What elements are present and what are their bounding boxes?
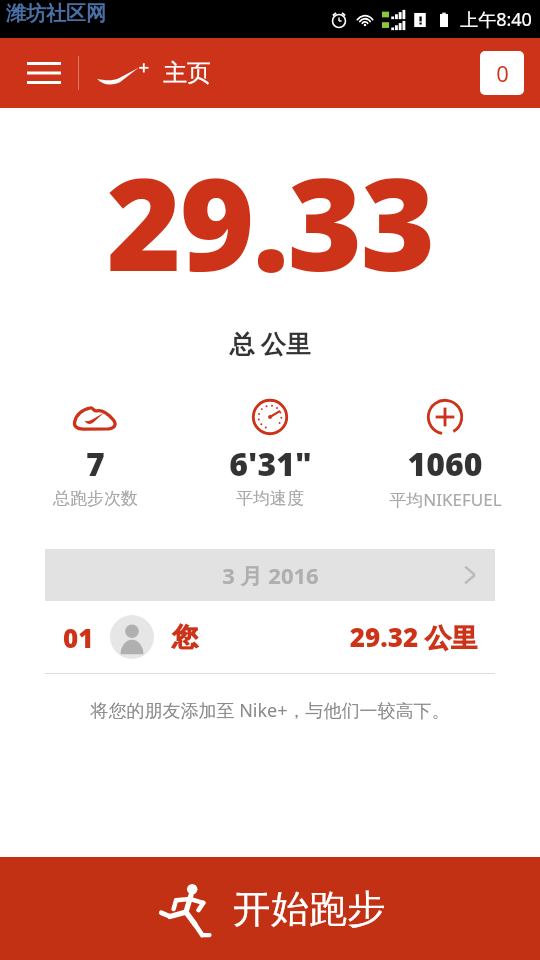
- staticText: 6'31": [229, 442, 312, 486]
- button[interactable]: 6'31": [190, 398, 350, 509]
- staticText: 01: [63, 620, 94, 655]
- staticText: 1060: [407, 442, 483, 486]
- button[interactable]: Menu: [22, 51, 66, 95]
- staticText: 开始跑步: [233, 885, 385, 933]
- button[interactable]: 1060: [365, 398, 525, 511]
- staticText: 29.32 公里: [349, 619, 477, 655]
- staticText: 您: [172, 621, 198, 654]
- button[interactable]: 开始跑步: [0, 857, 540, 960]
- staticText: 潍坊社区网: [6, 1, 106, 26]
- staticText: 平均速度: [236, 488, 304, 509]
- staticText: 3 月 2016: [222, 560, 319, 590]
- button[interactable]: 0: [480, 51, 524, 95]
- staticText: 平均NIKEFUEL: [389, 488, 502, 511]
- staticText: 0: [496, 58, 509, 88]
- button[interactable]: 3 月 2016: [45, 549, 495, 601]
- staticText: 上午8:40: [460, 7, 532, 32]
- staticText: 主页: [163, 58, 211, 88]
- staticText: 7: [86, 442, 105, 486]
- staticText: 总跑步次数: [53, 488, 138, 509]
- button[interactable]: 7: [15, 398, 175, 509]
- staticText: 将您的朋友添加至 Nike+，与他们一较高下。: [90, 698, 450, 723]
- staticText: 总 公里: [229, 326, 311, 360]
- button[interactable]: 将您的朋友添加至 Nike+，与他们一较高下。: [45, 674, 495, 746]
- staticText: 29.33: [106, 134, 434, 308]
- button[interactable]: 01: [45, 601, 495, 673]
